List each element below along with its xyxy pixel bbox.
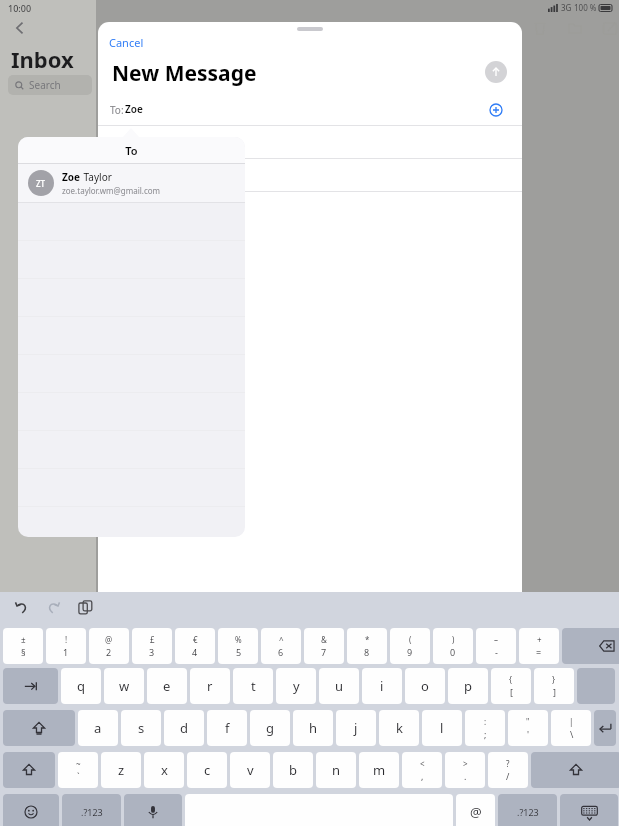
button[interactable]: b bbox=[273, 752, 313, 788]
button[interactable]: .?123 bbox=[62, 794, 121, 826]
button[interactable]: Paste bbox=[74, 596, 96, 618]
staticText: d bbox=[180, 719, 188, 737]
button[interactable]: f bbox=[207, 710, 247, 746]
staticText: 1 bbox=[63, 646, 69, 658]
button[interactable]: shift bbox=[531, 752, 619, 788]
button[interactable]: Back bbox=[8, 16, 32, 40]
button[interactable]: capslock bbox=[3, 710, 75, 746]
staticText: q bbox=[77, 677, 85, 695]
button[interactable]: < bbox=[402, 752, 442, 788]
button[interactable]: Cancel bbox=[109, 35, 144, 50]
staticText: ' bbox=[527, 728, 530, 740]
button[interactable]: ~ bbox=[58, 752, 98, 788]
staticText: j bbox=[354, 719, 358, 737]
button[interactable]: @ bbox=[89, 628, 129, 664]
staticText: 6 bbox=[278, 646, 284, 658]
button[interactable]: ? bbox=[488, 752, 528, 788]
button[interactable]: c bbox=[187, 752, 227, 788]
button[interactable]: dismiss bbox=[560, 794, 618, 826]
button[interactable]: z bbox=[101, 752, 141, 788]
button[interactable]: : bbox=[465, 710, 505, 746]
staticText: v bbox=[247, 761, 254, 779]
staticText: [ bbox=[510, 686, 513, 698]
staticText: e bbox=[163, 677, 171, 695]
staticText: s bbox=[138, 719, 145, 737]
button[interactable]: emoji bbox=[3, 794, 59, 826]
button[interactable]: d bbox=[164, 710, 204, 746]
button[interactable]: s bbox=[121, 710, 161, 746]
button[interactable]: r bbox=[190, 668, 230, 704]
button[interactable]: Send bbox=[485, 61, 507, 83]
button[interactable]: ZT bbox=[18, 164, 245, 202]
button[interactable]: ( bbox=[390, 628, 430, 664]
button[interactable]: Undo bbox=[10, 596, 32, 618]
staticText: 0 bbox=[450, 646, 456, 658]
button[interactable]: g bbox=[250, 710, 290, 746]
button[interactable]: e bbox=[147, 668, 187, 704]
button[interactable]: q bbox=[61, 668, 101, 704]
button[interactable]: return bbox=[594, 710, 616, 746]
button[interactable]: t bbox=[233, 668, 273, 704]
button[interactable]: + bbox=[519, 628, 559, 664]
button[interactable]: shift bbox=[3, 752, 55, 788]
button[interactable]: " bbox=[508, 710, 548, 746]
button[interactable]: { bbox=[491, 668, 531, 704]
staticText: { bbox=[509, 674, 513, 685]
button[interactable]: u bbox=[319, 668, 359, 704]
button[interactable]: mic bbox=[124, 794, 182, 826]
button[interactable]: | bbox=[551, 710, 591, 746]
button[interactable]: k bbox=[379, 710, 419, 746]
button[interactable]: y bbox=[276, 668, 316, 704]
button[interactable]: i bbox=[362, 668, 402, 704]
button[interactable]: v bbox=[230, 752, 270, 788]
staticText: zoe.taylor.wm@gmail.com bbox=[62, 185, 161, 196]
staticText: a bbox=[94, 719, 102, 737]
button[interactable]: % bbox=[218, 628, 258, 664]
button[interactable]: m bbox=[359, 752, 399, 788]
button[interactable]: & bbox=[304, 628, 344, 664]
button[interactable]: > bbox=[445, 752, 485, 788]
button[interactable]: £ bbox=[132, 628, 172, 664]
staticText: m bbox=[373, 761, 386, 779]
button[interactable]: Add contact bbox=[488, 102, 504, 118]
button[interactable]: ! bbox=[46, 628, 86, 664]
button[interactable]: – bbox=[476, 628, 516, 664]
button[interactable]: ) bbox=[433, 628, 473, 664]
button[interactable]: a bbox=[78, 710, 118, 746]
staticText: } bbox=[552, 674, 556, 685]
staticText: 3G bbox=[561, 2, 572, 13]
button[interactable]: } bbox=[534, 668, 574, 704]
button[interactable]: .?123 bbox=[498, 794, 557, 826]
button[interactable]: Search bbox=[8, 75, 92, 95]
staticText: 2 bbox=[106, 646, 112, 658]
button[interactable]: h bbox=[293, 710, 333, 746]
staticText: ^ bbox=[279, 634, 284, 645]
button[interactable]: x bbox=[144, 752, 184, 788]
button[interactable]: tab bbox=[3, 668, 58, 704]
staticText: .?123 bbox=[81, 806, 103, 818]
staticText: ( bbox=[409, 634, 412, 645]
staticText: 7 bbox=[321, 646, 327, 658]
button[interactable]: ± bbox=[3, 628, 43, 664]
button[interactable]: @ bbox=[456, 794, 495, 826]
button[interactable]: w bbox=[104, 668, 144, 704]
staticText: r bbox=[207, 677, 213, 695]
button[interactable]: l bbox=[422, 710, 462, 746]
button[interactable]: j bbox=[336, 710, 376, 746]
button[interactable]: n bbox=[316, 752, 356, 788]
button[interactable]: € bbox=[175, 628, 215, 664]
button[interactable]: * bbox=[347, 628, 387, 664]
button[interactable]: p bbox=[448, 668, 488, 704]
staticText: @ bbox=[470, 803, 482, 821]
staticText: ) bbox=[452, 634, 455, 645]
button[interactable]: ^ bbox=[261, 628, 301, 664]
staticText: ZT bbox=[36, 178, 46, 189]
button[interactable]: Redo bbox=[42, 596, 64, 618]
button[interactable]: o bbox=[405, 668, 445, 704]
button[interactable]: backspace bbox=[562, 628, 619, 664]
